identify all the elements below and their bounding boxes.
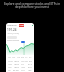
staticText: 0.51 bbox=[28, 66, 32, 69]
staticText: Open bbox=[8, 60, 13, 63]
staticText: 193.0 bbox=[14, 63, 19, 66]
staticText: 1D bbox=[8, 56, 11, 59]
staticText: Performance bbox=[7, 39, 20, 42]
staticText: -2.34 (1.21%) bbox=[7, 32, 19, 35]
staticText: 198 bbox=[28, 69, 32, 72]
staticText: 190.2 bbox=[14, 60, 19, 63]
staticText: 5Y bbox=[29, 56, 32, 59]
staticText: -1.2% bbox=[19, 24, 24, 27]
staticText: 1M bbox=[17, 56, 20, 59]
staticText: Yield bbox=[21, 66, 26, 69]
staticText: 2.9T bbox=[29, 60, 32, 63]
button[interactable]: 1Y bbox=[25, 56, 28, 59]
staticText: 52w bbox=[21, 69, 25, 72]
staticText: Vol bbox=[8, 69, 11, 72]
staticText: 1W bbox=[12, 56, 16, 59]
button[interactable]: Apple Inc. bbox=[7, 24, 33, 27]
staticText: Low bbox=[8, 66, 12, 69]
staticText: Mkt cap bbox=[21, 60, 29, 63]
button[interactable]: 1M bbox=[17, 56, 20, 59]
button[interactable]: 5Y bbox=[29, 56, 32, 59]
staticText: Explore and compare stocks and ETFs in d… bbox=[2, 2, 62, 9]
staticText: 191.24 bbox=[7, 28, 17, 32]
staticText: 31.4 bbox=[28, 63, 32, 66]
staticText: High bbox=[8, 63, 13, 66]
button[interactable]: 1D bbox=[8, 56, 11, 59]
staticText: 54.2M bbox=[13, 69, 19, 72]
button[interactable]: 1W bbox=[12, 56, 16, 59]
button[interactable]: 3M bbox=[21, 56, 24, 59]
staticText: 1Y bbox=[25, 56, 28, 59]
staticText: 3M bbox=[21, 56, 24, 59]
staticText: Apple Inc. bbox=[7, 24, 18, 27]
staticText: 189.4 bbox=[14, 66, 19, 69]
staticText: P/E bbox=[21, 63, 24, 66]
